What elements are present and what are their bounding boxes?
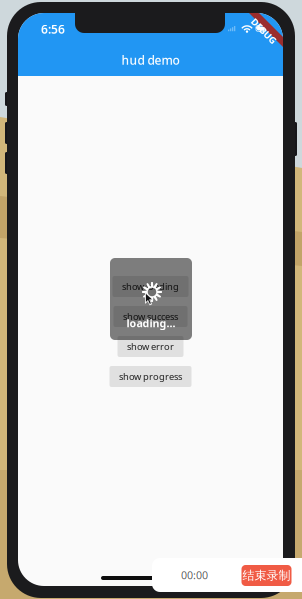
staticText: hud demo xyxy=(121,52,179,68)
staticText: show progress xyxy=(119,370,182,383)
button[interactable]: show success xyxy=(113,306,187,327)
button[interactable]: show loading xyxy=(112,276,188,297)
button[interactable]: 结束录制 xyxy=(241,565,291,586)
staticText: 6:56 xyxy=(41,21,65,37)
staticText: DEBUG xyxy=(248,25,280,37)
staticText: 00:00 xyxy=(181,568,208,582)
staticText: show error xyxy=(127,340,174,353)
button[interactable]: show progress xyxy=(109,366,191,387)
button[interactable]: show error xyxy=(117,336,183,357)
staticText: show success xyxy=(123,310,178,323)
staticText: show loading xyxy=(122,280,179,293)
staticText: loading... xyxy=(126,316,175,330)
staticText: 结束录制 xyxy=(242,568,290,583)
